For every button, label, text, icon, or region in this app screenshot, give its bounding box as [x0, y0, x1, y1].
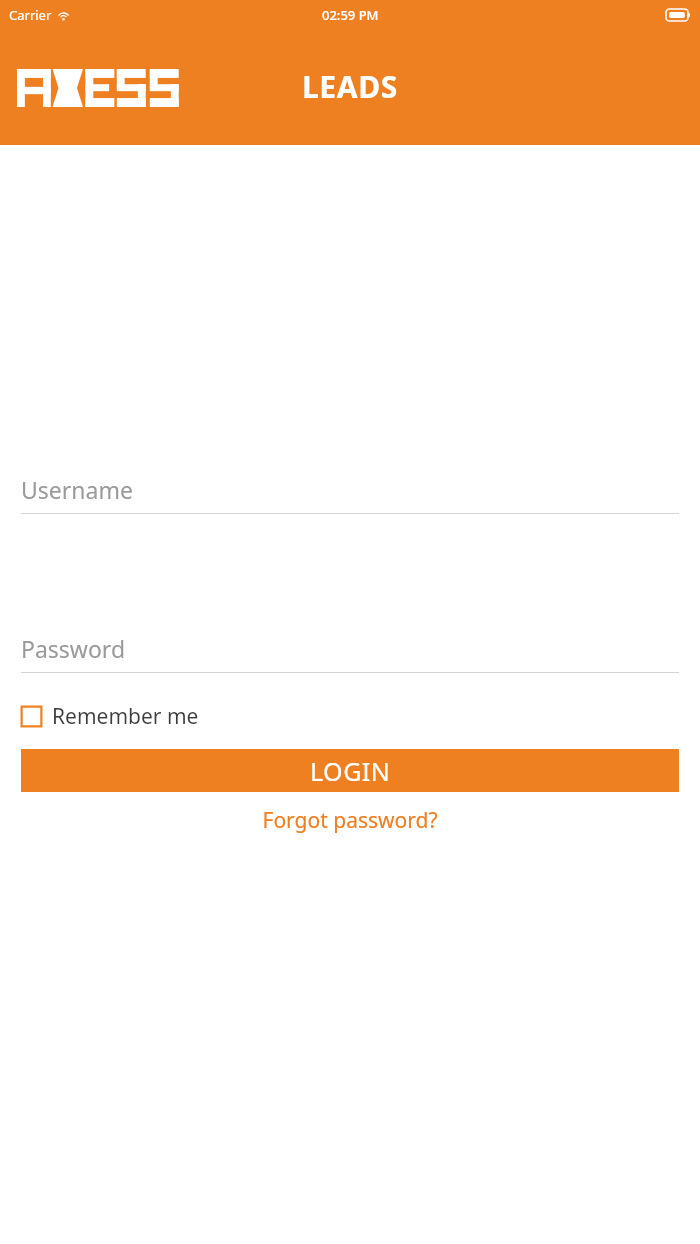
staticText: Forgot password?	[262, 806, 438, 835]
button[interactable]: Remember me	[21, 702, 199, 731]
staticText: 02:59 PM	[322, 6, 379, 24]
other: Axess logo	[17, 69, 182, 107]
staticText: Remember me	[52, 702, 199, 731]
button[interactable]: Forgot password?	[21, 806, 679, 835]
staticText: Username	[21, 474, 133, 505]
staticText: LEADS	[302, 66, 398, 107]
button[interactable]: LOGIN	[21, 749, 679, 792]
button[interactable]: Password	[21, 625, 679, 672]
staticText: Carrier	[9, 6, 52, 24]
button[interactable]: Username	[21, 466, 679, 513]
staticText: Password	[21, 633, 126, 664]
staticText: LOGIN	[310, 754, 391, 788]
